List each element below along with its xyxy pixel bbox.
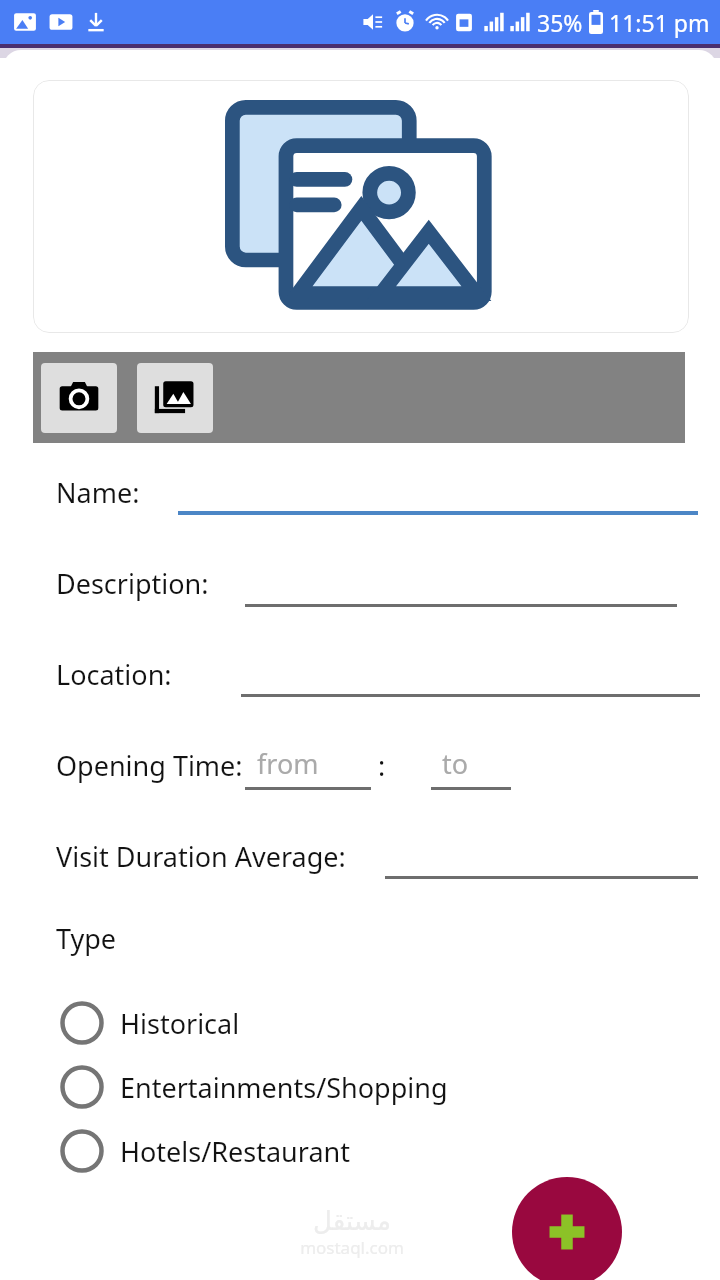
staticText: 35%: [537, 7, 583, 38]
staticText: to: [442, 745, 469, 782]
button[interactable]: Add place: [512, 1177, 622, 1280]
button[interactable]: Selected image preview: [33, 80, 689, 333]
staticText: Type: [56, 920, 117, 957]
staticText: :: [378, 747, 386, 784]
staticText: Description:: [56, 565, 209, 602]
button[interactable]: Hotels/Restaurant: [60, 1128, 350, 1174]
staticText: Location:: [56, 656, 172, 693]
staticText: Historical: [120, 1005, 240, 1042]
staticText: Hotels/Restaurant: [120, 1133, 350, 1170]
staticText: 11:51 pm: [609, 7, 710, 38]
button[interactable]: Historical: [60, 1000, 240, 1046]
staticText: Entertainments/Shopping: [120, 1069, 448, 1106]
staticText: Opening Time:: [56, 747, 243, 784]
button[interactable]: Entertainments/Shopping: [60, 1064, 448, 1110]
staticText: mostaql.com: [300, 1236, 404, 1259]
staticText: Visit Duration Average:: [56, 838, 346, 875]
button[interactable]: Pick image from gallery: [137, 363, 213, 433]
button[interactable]: from: [257, 745, 319, 782]
staticText: مستقل: [313, 1206, 391, 1236]
staticText: from: [257, 745, 319, 782]
button[interactable]: to: [442, 745, 469, 782]
staticText: Name:: [56, 474, 140, 511]
button[interactable]: Take photo with camera: [41, 363, 117, 433]
